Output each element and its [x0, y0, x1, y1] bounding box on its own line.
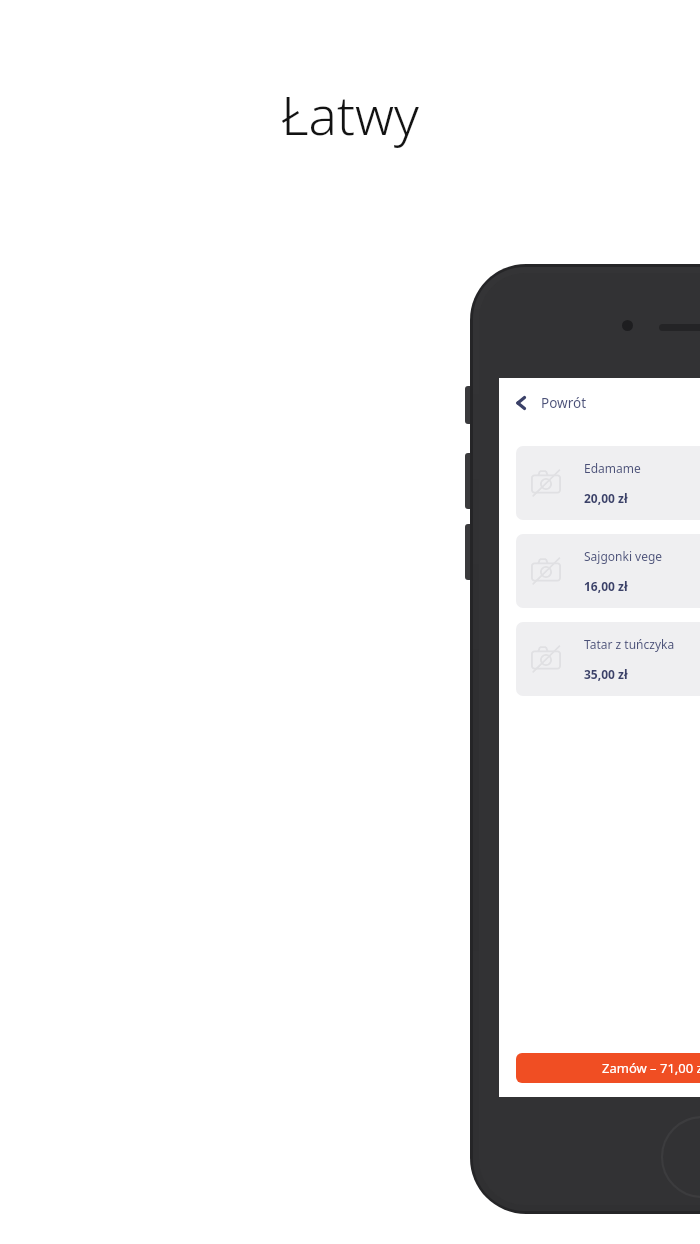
- staticText: 20,00 zł: [584, 490, 628, 506]
- staticText: Łatwy: [281, 78, 419, 150]
- staticText: 16,00 zł: [584, 578, 628, 594]
- staticText: Zamów – 71,00 zł: [602, 1059, 700, 1077]
- staticText: Edamame: [584, 460, 641, 476]
- other: No image: [530, 467, 562, 499]
- other: No image: [530, 555, 562, 587]
- staticText: Sajgonki vege: [584, 548, 663, 564]
- button[interactable]: No image: [516, 446, 700, 520]
- button[interactable]: Zamów – 71,00 zł: [516, 1053, 700, 1083]
- staticText: 35,00 zł: [584, 666, 628, 682]
- staticText: Powrót: [541, 394, 587, 412]
- button[interactable]: Powrót: [499, 378, 700, 428]
- button[interactable]: No image: [516, 622, 700, 696]
- other: No image: [530, 643, 562, 675]
- staticText: Tatar z tuńczyka: [584, 636, 675, 652]
- button[interactable]: No image: [516, 534, 700, 608]
